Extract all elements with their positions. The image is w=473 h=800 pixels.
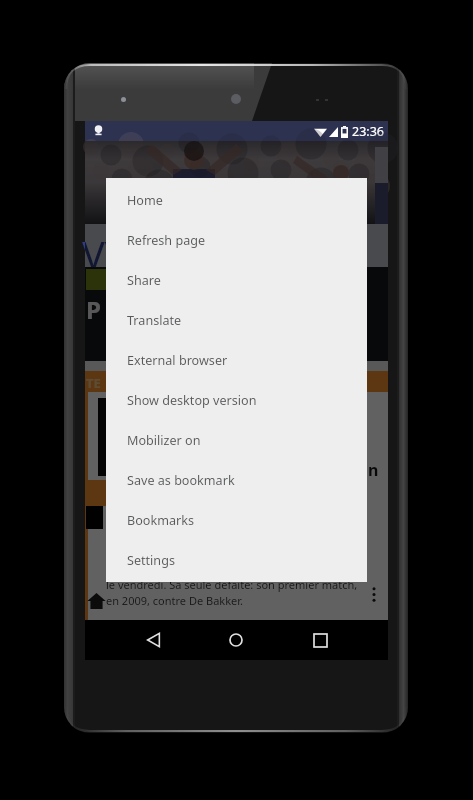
staticText: n (368, 459, 379, 481)
button[interactable]: Home (215, 620, 257, 660)
staticText: en 2009, contre De Bakker. (106, 593, 244, 608)
button[interactable]: Home (106, 180, 367, 220)
button[interactable]: Show desktop version (106, 380, 367, 420)
button[interactable]: Refresh page (106, 220, 367, 260)
button[interactable]: Share (106, 260, 367, 300)
staticText: Refresh page (127, 232, 206, 249)
button[interactable]: Save as bookmark (106, 460, 367, 500)
staticText: 23:36 (352, 123, 384, 140)
button[interactable]: External browser (106, 340, 367, 380)
button[interactable]: Translate (106, 300, 367, 340)
staticText: Settings (127, 552, 175, 569)
button[interactable]: Recent apps (299, 620, 341, 660)
staticText: Share (127, 272, 161, 289)
staticText: le vendredi. Sa seule defaite: son premi… (106, 577, 358, 592)
staticText: External browser (127, 352, 228, 369)
button[interactable]: Mobilizer on (106, 420, 367, 460)
staticText: Mobilizer on (127, 432, 201, 449)
button[interactable]: Back (132, 620, 174, 660)
staticText: VV (82, 228, 128, 271)
button[interactable]: Settings (106, 540, 367, 580)
staticText: Save as bookmark (127, 472, 235, 489)
staticText: Translate (127, 312, 182, 329)
staticText: Home (127, 192, 163, 209)
staticText: TE (86, 374, 101, 392)
button[interactable]: Bookmarks (106, 500, 367, 540)
staticText: Show desktop version (127, 392, 257, 409)
staticText: Bookmarks (127, 512, 194, 529)
staticText: P (86, 293, 101, 326)
